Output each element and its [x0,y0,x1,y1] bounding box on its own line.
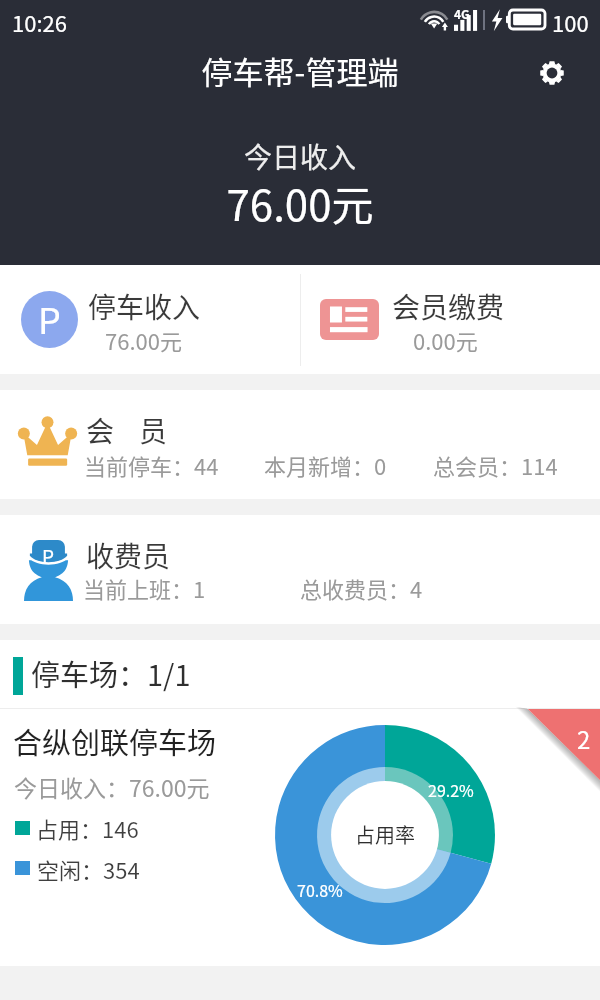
staticText: 100 [552,6,589,38]
button[interactable]: 合纵创联停车场 [0,709,600,966]
button[interactable]: P [0,515,600,624]
staticText: P [38,292,61,344]
staticText: 总会员：114 [433,449,558,481]
staticText: 0.00元 [413,324,478,356]
staticText: 收费员 [86,535,171,576]
staticText: 空闲：354 [37,853,140,885]
staticText: 29.2% [428,778,474,801]
button[interactable]: P [0,265,300,374]
staticText: 10:26 [12,6,67,38]
staticText: 停车帮-管理端 [0,48,600,93]
staticText: 停车场：1/1 [31,652,191,694]
staticText: 总收费员：4 [300,572,423,604]
staticText: 会 员 [86,410,168,451]
staticText: 当前上班：1 [83,572,206,604]
staticText: 合纵创联停车场 [13,720,217,762]
staticText: 今日收入：76.00元 [14,770,210,803]
button[interactable]: 会 员 [0,390,600,499]
staticText: 70.8% [297,878,343,901]
staticText: 停车收入 [88,286,201,327]
staticText: 今日收入 [0,136,600,177]
staticText: 本月新增：0 [264,449,387,481]
staticText: 2 [577,721,591,756]
button[interactable]: Settings [528,49,575,96]
staticText: 4G [454,5,470,22]
staticText: 76.00元 [0,172,600,233]
staticText: 会员缴费 [392,286,505,327]
staticText: 当前停车：44 [84,449,219,481]
button[interactable]: 会员缴费 [300,265,600,374]
staticText: 占用率 [355,820,415,849]
staticText: 76.00元 [105,324,182,356]
staticText: 占用：146 [36,812,139,844]
staticText: P [42,542,55,570]
